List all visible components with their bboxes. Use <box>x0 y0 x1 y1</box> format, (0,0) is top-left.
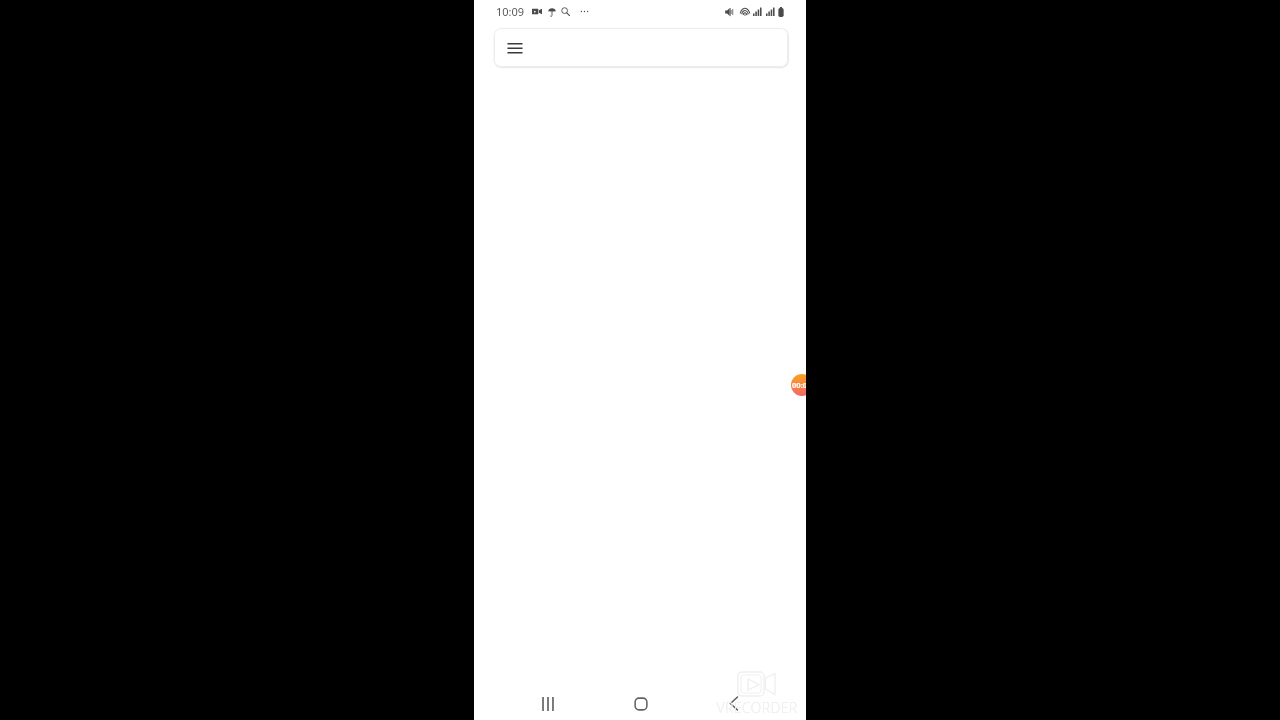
button[interactable]: Recording timer <box>791 374 806 396</box>
button[interactable]: Search <box>494 28 788 67</box>
staticText: 00:08 <box>792 380 806 390</box>
button[interactable]: Home <box>621 687 661 720</box>
staticText: VRECORDER <box>716 698 798 717</box>
button[interactable]: Back <box>714 687 754 720</box>
button[interactable]: Recents <box>528 687 568 720</box>
staticText: 10:09 <box>496 4 525 19</box>
button[interactable]: Menu <box>502 35 527 60</box>
